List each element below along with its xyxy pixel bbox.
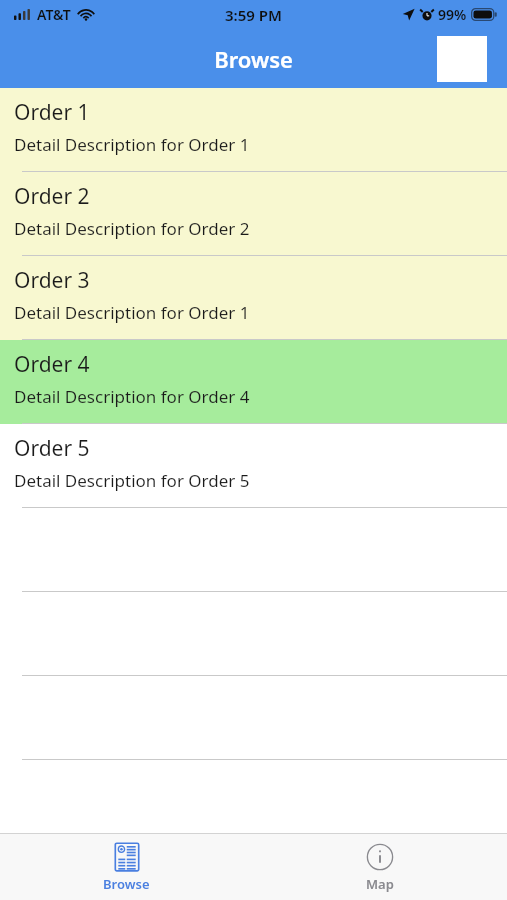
staticText: AT&T	[37, 5, 71, 24]
staticText: Order 1	[14, 98, 90, 127]
staticText: Detail Description for Order 1	[14, 133, 250, 156]
button[interactable]: Order 5	[0, 424, 507, 508]
button[interactable]	[0, 508, 507, 592]
staticText: Order 2	[14, 182, 90, 211]
button[interactable]	[0, 676, 507, 760]
button[interactable]: Order 3	[0, 256, 507, 340]
staticText: Detail Description for Order 1	[14, 301, 250, 324]
staticText: 3:59 PM	[225, 5, 282, 25]
staticText: Detail Description for Order 4	[14, 385, 250, 408]
staticText: Detail Description for Order 5	[14, 469, 250, 492]
button[interactable]	[0, 592, 507, 676]
staticText: Browse	[214, 44, 293, 74]
staticText: Order 5	[14, 434, 90, 463]
staticText: 99%	[438, 5, 467, 24]
staticText: Detail Description for Order 2	[14, 217, 250, 240]
staticText: Map	[366, 875, 394, 893]
staticText: Order 3	[14, 266, 90, 295]
staticText: Browse	[103, 875, 150, 893]
button[interactable]: Map	[253, 834, 507, 900]
button[interactable]: Browse	[0, 834, 253, 900]
button[interactable]: Order 4	[0, 340, 507, 424]
staticText: Order 4	[14, 350, 90, 379]
button[interactable]: Order 2	[0, 172, 507, 256]
button[interactable]: Order 1	[0, 88, 507, 172]
